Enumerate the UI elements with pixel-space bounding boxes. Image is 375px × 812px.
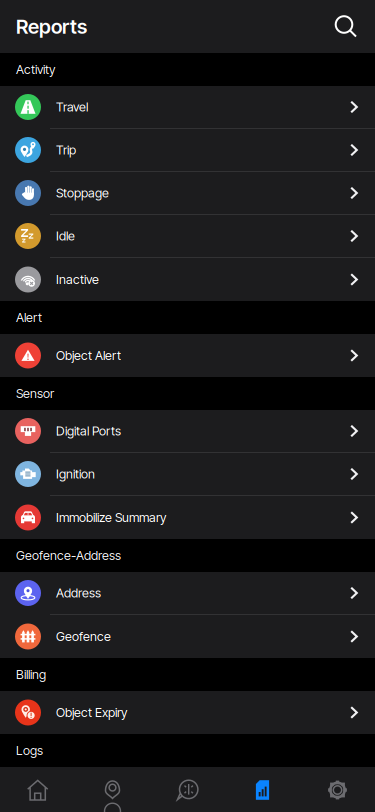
staticText: Travel xyxy=(56,99,88,115)
staticText: Object Alert xyxy=(56,348,121,363)
button[interactable]: Object Alert xyxy=(0,334,375,377)
button[interactable]: Address xyxy=(0,572,375,615)
staticText: Logs xyxy=(16,743,43,758)
staticText: Address xyxy=(56,585,101,601)
button[interactable]: Reports xyxy=(225,767,300,812)
staticText: Ignition xyxy=(56,466,95,482)
button[interactable]: Home xyxy=(0,767,75,812)
button[interactable]: Digital Ports xyxy=(0,410,375,453)
button[interactable]: Inactive xyxy=(0,258,375,301)
staticText: Sensor xyxy=(16,386,54,401)
button[interactable]: Search xyxy=(329,6,363,46)
button[interactable]: Trip xyxy=(0,129,375,172)
button[interactable]: Messages xyxy=(150,767,225,812)
button[interactable]: Settings xyxy=(300,767,375,812)
staticText: Geofence-Address xyxy=(16,548,121,563)
staticText: Object Expiry xyxy=(56,705,127,720)
button[interactable]: Immobilize Summary xyxy=(0,496,375,539)
button[interactable]: Ignition xyxy=(0,453,375,496)
button[interactable]: Stoppage xyxy=(0,172,375,215)
staticText: Geofence xyxy=(56,629,111,644)
staticText: Reports xyxy=(16,14,87,39)
staticText: Trip xyxy=(56,142,76,158)
staticText: Activity xyxy=(16,62,55,77)
button[interactable]: Object Expiry xyxy=(0,691,375,734)
staticText: Digital Ports xyxy=(56,423,121,439)
staticText: Inactive xyxy=(56,272,99,287)
button[interactable]: Geofence xyxy=(0,615,375,658)
staticText: Idle xyxy=(56,228,75,244)
staticText: Immobilize Summary xyxy=(56,510,166,525)
staticText: Billing xyxy=(16,667,46,682)
staticText: Alert xyxy=(16,310,42,325)
button[interactable]: Locations xyxy=(75,767,150,812)
button[interactable]: Travel xyxy=(0,86,375,129)
staticText: Stoppage xyxy=(56,185,109,201)
button[interactable]: Idle xyxy=(0,215,375,258)
